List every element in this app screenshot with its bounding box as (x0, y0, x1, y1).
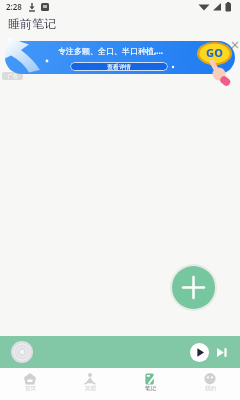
staticText: 笔记 (145, 385, 156, 392)
staticText: 睡前笔记 (8, 16, 56, 31)
button[interactable]: 笔记 (129, 373, 171, 399)
staticText: 2:28 (6, 1, 22, 12)
button[interactable]: 专注多颗、全口、半口种植,... (5, 41, 235, 74)
staticText: 首页 (25, 385, 36, 392)
staticText: 冥想 (85, 385, 96, 392)
button[interactable]: 查看详情 (70, 62, 168, 71)
staticText: 查看详情 (107, 63, 131, 71)
button[interactable]: 我的 (189, 373, 231, 399)
staticText: GO (202, 45, 227, 60)
staticText: 专注多颗、全口、半口种植,... (58, 45, 163, 56)
staticText: 广告 (8, 73, 18, 79)
button[interactable]: 冥想 (69, 373, 111, 399)
button[interactable] (190, 343, 209, 362)
button[interactable] (172, 266, 215, 309)
staticText: 我的 (205, 385, 216, 392)
button[interactable]: 首页 (9, 373, 51, 399)
button[interactable] (217, 348, 228, 357)
